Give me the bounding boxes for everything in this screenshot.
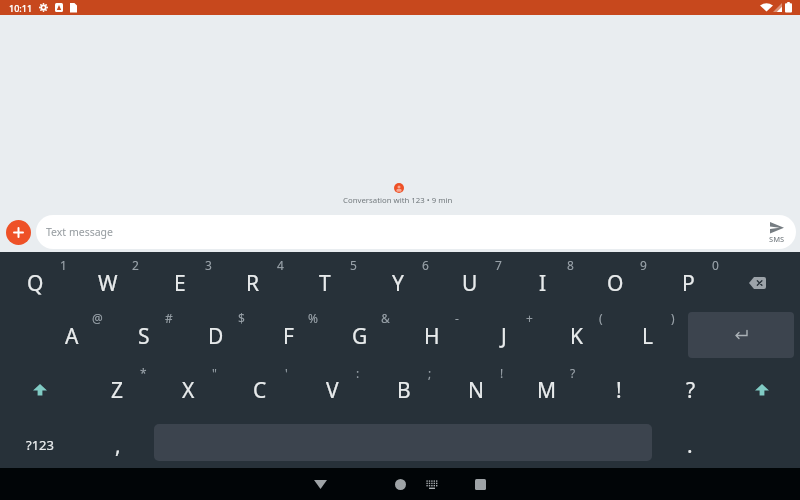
staticText: G [352,322,368,351]
button[interactable]: , [88,419,148,471]
staticText: Q [27,269,44,298]
staticText: # [165,310,173,326]
staticText: ? [570,365,576,381]
button[interactable]: H [397,310,467,362]
button[interactable] [758,215,796,249]
staticText: % [308,310,318,326]
button[interactable]: ?123 [4,419,76,471]
button[interactable]: D [181,310,251,362]
button[interactable]: S [109,310,179,362]
button[interactable]: P [653,257,723,309]
staticText: ' [285,365,288,381]
staticText: ! [616,376,622,405]
button[interactable]: Y [363,257,433,309]
staticText: ) [671,310,675,326]
button[interactable]: M [512,364,582,416]
staticText: N [468,376,484,405]
staticText: 0 [712,257,719,273]
staticText: W [98,269,118,298]
button[interactable]: L [613,310,683,362]
staticText: SMS [769,234,785,244]
staticText: ? [686,376,696,405]
staticText: ?123 [26,436,54,454]
staticText: O [607,269,624,298]
staticText: X [182,376,195,405]
staticText: Y [392,269,404,298]
staticText: T [319,269,331,298]
staticText: J [501,322,507,351]
button[interactable]: I [508,257,578,309]
staticText: K [570,322,583,351]
staticText: C [253,376,267,405]
staticText: P [682,269,695,298]
button[interactable]: V [297,364,367,416]
button[interactable] [6,220,31,245]
staticText: V [326,376,339,405]
staticText: L [642,322,654,351]
button[interactable] [36,215,796,249]
staticText: ; [428,365,432,381]
staticText: B [397,376,411,405]
staticText: 7 [495,257,502,273]
staticText: Conversation with 123 • 9 min [343,195,453,206]
staticText: & [381,310,390,326]
button[interactable] [420,470,444,498]
button[interactable]: Z [82,364,152,416]
button[interactable]: J [469,310,539,362]
staticText: H [424,322,440,351]
staticText: . [687,431,693,460]
staticText: D [208,322,224,351]
staticText: 8 [567,257,574,273]
staticText: - [455,310,459,326]
button[interactable]: A [37,310,107,362]
button[interactable] [380,468,420,500]
button[interactable]: U [435,257,505,309]
staticText: : [356,365,360,381]
staticText: U [462,269,478,298]
staticText: Z [111,376,124,405]
button[interactable]: K [541,310,611,362]
staticText: S [138,322,150,351]
button[interactable] [300,468,340,500]
button[interactable]: C [225,364,295,416]
button[interactable]: E [145,257,215,309]
button[interactable] [722,257,794,309]
button[interactable] [460,468,500,500]
staticText: R [246,269,260,298]
button[interactable]: N [441,364,511,416]
staticText: 4 [277,257,284,273]
staticText: , [115,431,121,460]
button[interactable]: T [290,257,360,309]
button[interactable] [688,312,794,358]
button[interactable]: Q [0,257,70,309]
staticText: * [140,365,147,381]
button[interactable]: B [369,364,439,416]
staticText: F [283,322,294,351]
button[interactable]: F [253,310,323,362]
button[interactable]: G [325,310,395,362]
staticText: 2 [132,257,139,273]
staticText: + [526,310,533,326]
staticText: I [539,269,547,298]
button[interactable]: W [73,257,143,309]
staticText: " [212,365,217,381]
button[interactable]: ? [656,364,726,416]
button[interactable]: R [218,257,288,309]
staticText: @ [92,310,103,326]
staticText: 5 [350,257,357,273]
staticText: ! [500,365,504,381]
staticText: 10:11 [9,2,33,14]
staticText: 9 [640,257,647,273]
staticText: E [174,269,186,298]
staticText: M [537,376,557,405]
staticText: Text message [46,225,113,239]
button[interactable]: ! [584,364,654,416]
button[interactable]: X [153,364,223,416]
button[interactable]: O [580,257,650,309]
button[interactable]: . [660,419,720,471]
staticText: 1 [60,257,67,273]
button[interactable] [4,364,76,416]
button[interactable] [726,364,798,416]
staticText: $ [238,310,245,326]
